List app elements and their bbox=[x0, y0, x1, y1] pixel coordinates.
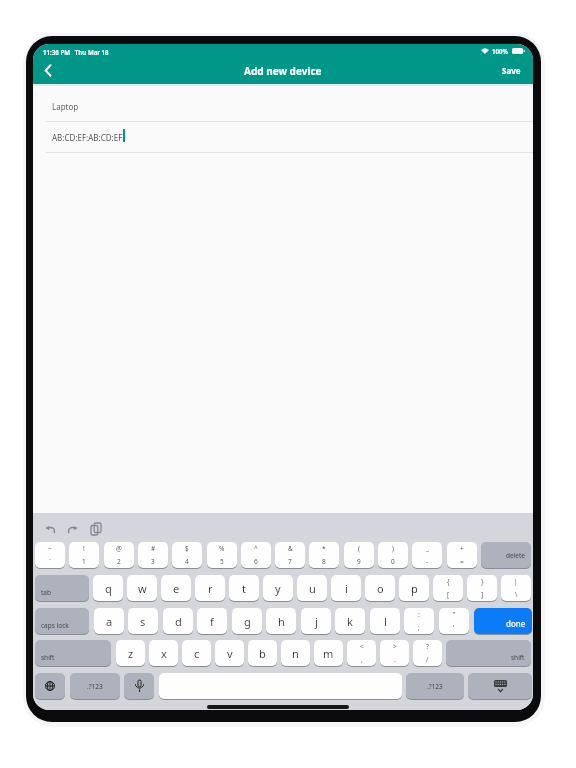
staticText: f bbox=[210, 614, 214, 629]
button[interactable]: p bbox=[399, 575, 429, 601]
button[interactable]: ( bbox=[344, 542, 374, 568]
staticText: q bbox=[105, 581, 112, 596]
staticText: } bbox=[481, 577, 484, 586]
button[interactable]: v bbox=[215, 640, 244, 666]
button[interactable]: q bbox=[93, 575, 123, 601]
button[interactable]: ^ bbox=[241, 542, 271, 568]
staticText: c bbox=[194, 646, 200, 661]
staticText: * bbox=[322, 544, 326, 553]
button[interactable]: .?123 bbox=[70, 673, 120, 699]
button[interactable] bbox=[124, 673, 154, 699]
staticText: s bbox=[140, 614, 146, 629]
staticText: 2 bbox=[117, 557, 121, 566]
button[interactable]: e bbox=[161, 575, 191, 601]
button[interactable] bbox=[159, 673, 402, 699]
staticText: 9 bbox=[357, 557, 361, 566]
button[interactable]: c bbox=[182, 640, 211, 666]
staticText: - bbox=[426, 557, 429, 566]
button[interactable]: o bbox=[365, 575, 395, 601]
button[interactable]: delete bbox=[481, 542, 531, 568]
button[interactable]: x bbox=[149, 640, 178, 666]
button[interactable]: ) bbox=[378, 542, 408, 568]
button[interactable]: Save bbox=[502, 65, 521, 76]
staticText: 0 bbox=[391, 557, 395, 566]
button[interactable]: j bbox=[301, 608, 331, 634]
button[interactable]: r bbox=[195, 575, 225, 601]
button[interactable]: t bbox=[229, 575, 259, 601]
button[interactable] bbox=[35, 673, 65, 699]
button[interactable] bbox=[42, 64, 55, 77]
staticText: done bbox=[506, 618, 526, 629]
button[interactable]: shift bbox=[35, 640, 111, 666]
button[interactable]: u bbox=[297, 575, 327, 601]
button[interactable]: a bbox=[94, 608, 124, 634]
button[interactable]: l bbox=[370, 608, 400, 634]
button[interactable]: done bbox=[474, 608, 532, 634]
staticText: ) bbox=[392, 544, 394, 553]
button[interactable]: # bbox=[138, 542, 168, 568]
button[interactable]: n bbox=[281, 640, 310, 666]
button[interactable]: & bbox=[275, 542, 305, 568]
staticText: j bbox=[315, 614, 318, 629]
button[interactable]: y bbox=[263, 575, 293, 601]
button[interactable]: f bbox=[197, 608, 227, 634]
button[interactable]: g bbox=[232, 608, 262, 634]
staticText: | bbox=[514, 577, 518, 586]
button[interactable]: .?123 bbox=[406, 673, 464, 699]
button[interactable]: * bbox=[309, 542, 339, 568]
staticText: $ bbox=[185, 544, 189, 553]
button[interactable]: % bbox=[207, 542, 237, 568]
button[interactable]: > bbox=[380, 640, 409, 666]
staticText: o bbox=[377, 581, 384, 596]
button[interactable]: caps lock bbox=[35, 608, 89, 634]
staticText: Laptop bbox=[52, 101, 79, 112]
button[interactable]: k bbox=[335, 608, 365, 634]
button[interactable]: shift bbox=[446, 640, 531, 666]
staticText: 6 bbox=[254, 557, 258, 566]
button[interactable]: d bbox=[163, 608, 193, 634]
staticText: g bbox=[244, 614, 251, 629]
button[interactable]: + bbox=[447, 542, 477, 568]
button[interactable]: m bbox=[314, 640, 343, 666]
button[interactable]: : bbox=[404, 608, 434, 634]
button[interactable]: w bbox=[127, 575, 157, 601]
staticText: _ bbox=[426, 544, 429, 553]
staticText: = bbox=[460, 557, 464, 566]
staticText: @ bbox=[116, 544, 122, 553]
staticText: shift bbox=[511, 653, 525, 662]
staticText: 1 bbox=[82, 557, 86, 566]
staticText: / bbox=[426, 655, 429, 664]
button[interactable]: h bbox=[266, 608, 296, 634]
staticText: k bbox=[347, 614, 353, 629]
staticText: 8 bbox=[322, 557, 326, 566]
staticText: [ bbox=[447, 590, 450, 599]
staticText: shift bbox=[41, 653, 55, 662]
button[interactable] bbox=[468, 673, 532, 699]
button[interactable]: $ bbox=[172, 542, 202, 568]
staticText: e bbox=[173, 581, 180, 596]
button[interactable]: { bbox=[433, 575, 463, 601]
button[interactable]: b bbox=[248, 640, 277, 666]
button[interactable]: } bbox=[467, 575, 497, 601]
button[interactable]: _ bbox=[412, 542, 442, 568]
button[interactable]: tab bbox=[35, 575, 89, 601]
button[interactable]: < bbox=[347, 640, 376, 666]
button[interactable]: z bbox=[116, 640, 145, 666]
button[interactable]: i bbox=[331, 575, 361, 601]
staticText: i bbox=[345, 581, 348, 596]
staticText: 100% bbox=[492, 47, 509, 55]
button[interactable]: ? bbox=[413, 640, 442, 666]
button[interactable]: ” bbox=[439, 608, 469, 634]
staticText: ” bbox=[453, 610, 456, 619]
staticText: l bbox=[384, 614, 387, 629]
staticText: { bbox=[447, 577, 450, 586]
staticText: < bbox=[360, 642, 364, 651]
staticText: 3 bbox=[151, 557, 155, 566]
button[interactable]: s bbox=[128, 608, 158, 634]
button[interactable]: | bbox=[501, 575, 531, 601]
staticText: delete bbox=[506, 551, 526, 560]
staticText: u bbox=[309, 581, 316, 596]
button[interactable]: ! bbox=[69, 542, 99, 568]
button[interactable]: @ bbox=[104, 542, 134, 568]
button[interactable]: ~ bbox=[35, 542, 65, 568]
